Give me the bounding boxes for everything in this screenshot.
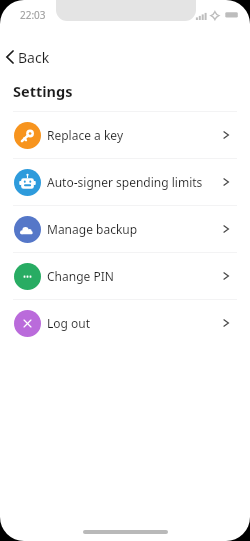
staticText: Replace a key bbox=[47, 127, 123, 143]
staticText: Manage backup bbox=[47, 221, 138, 237]
staticText: Change PIN bbox=[47, 268, 114, 284]
staticText: Back bbox=[18, 48, 50, 67]
staticText: Log out bbox=[47, 315, 91, 331]
button[interactable]: Log out bbox=[0, 300, 250, 346]
staticText: Auto-signer spending limits bbox=[47, 174, 203, 190]
button[interactable]: Change PIN bbox=[0, 253, 250, 299]
staticText: Settings bbox=[13, 81, 73, 101]
button[interactable]: Back bbox=[0, 44, 58, 70]
button[interactable]: Replace a key bbox=[0, 112, 250, 158]
staticText: 22:03 bbox=[20, 8, 46, 22]
button[interactable]: Manage backup bbox=[0, 206, 250, 252]
button[interactable]: Auto-signer spending limits bbox=[0, 159, 250, 205]
